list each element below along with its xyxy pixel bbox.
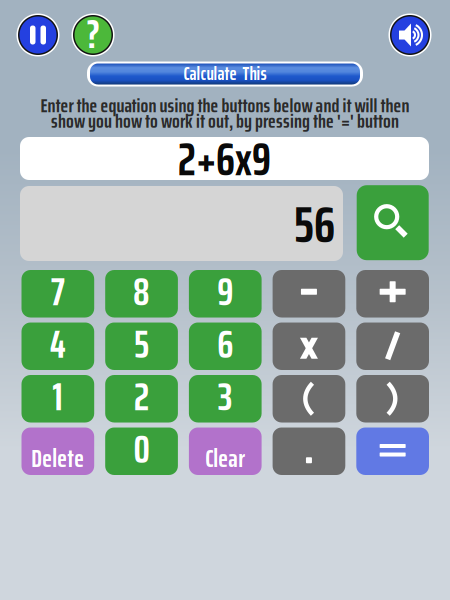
- button[interactable]: Sound: [388, 13, 432, 57]
- staticText: 9: [217, 261, 233, 322]
- staticText: 7: [51, 261, 65, 322]
- button[interactable]: Minus: [273, 270, 345, 317]
- staticText: 8: [133, 261, 150, 322]
- button[interactable]: 2: [105, 375, 178, 422]
- button[interactable]: Search: [357, 185, 429, 260]
- staticText: show you how to work it out, by pressing…: [51, 105, 399, 136]
- button[interactable]: 8: [105, 270, 178, 317]
- staticText: 3: [218, 366, 233, 427]
- button[interactable]: 1: [21, 375, 94, 422]
- staticText: 4: [50, 314, 66, 375]
- staticText: 2+6x9: [178, 124, 271, 195]
- button[interactable]: Help: [71, 13, 115, 57]
- staticText: 2: [134, 366, 149, 427]
- staticText: Enter the equation using the buttons bel…: [40, 89, 409, 121]
- button[interactable]: Multiply: [273, 322, 345, 370]
- staticText: 0: [134, 419, 150, 480]
- button[interactable]: Delete: [21, 427, 94, 475]
- staticText: Clear: [205, 438, 245, 478]
- button[interactable]: 5: [105, 322, 178, 370]
- button[interactable]: 6: [189, 322, 262, 370]
- button[interactable]: 9: [189, 270, 262, 317]
- button[interactable]: Plus: [356, 270, 429, 317]
- staticText: 5: [134, 314, 149, 375]
- staticText: ?: [86, 2, 99, 65]
- staticText: 56: [294, 185, 335, 264]
- staticText: Delete: [31, 438, 84, 478]
- staticText: 6: [217, 314, 233, 375]
- button[interactable]: 3: [189, 375, 262, 422]
- button[interactable]: 7: [21, 270, 94, 317]
- button[interactable]: 4: [21, 322, 94, 370]
- button[interactable]: Decimal point: [273, 427, 345, 475]
- button[interactable]: Open parenthesis: [273, 375, 345, 422]
- button[interactable]: Equals: [356, 427, 429, 475]
- button[interactable]: Pause: [16, 13, 60, 57]
- button[interactable]: Divide: [356, 322, 429, 370]
- staticText: 1: [52, 366, 63, 427]
- staticText: Calculate This: [183, 59, 266, 88]
- button[interactable]: Close parenthesis: [356, 375, 429, 422]
- button[interactable]: 0: [105, 427, 178, 475]
- button[interactable]: Clear: [189, 427, 262, 475]
